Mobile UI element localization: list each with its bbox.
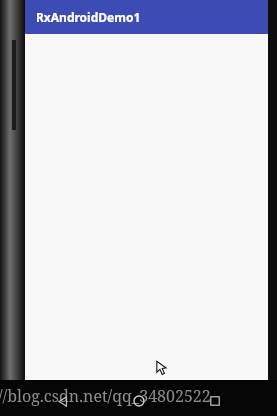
button[interactable]: RxAndroidDemo1: [25, 0, 268, 34]
button[interactable]: Recent apps: [201, 387, 229, 415]
staticText: //blog.csdn.net/qq_34802522: [0, 385, 211, 407]
staticText: RxAndroidDemo1: [36, 9, 141, 25]
button[interactable]: Back: [48, 387, 76, 415]
staticText: 获取数据: [129, 398, 165, 409]
button[interactable]: Home: [125, 387, 153, 415]
button[interactable]: 获取数据: [26, 393, 267, 414]
